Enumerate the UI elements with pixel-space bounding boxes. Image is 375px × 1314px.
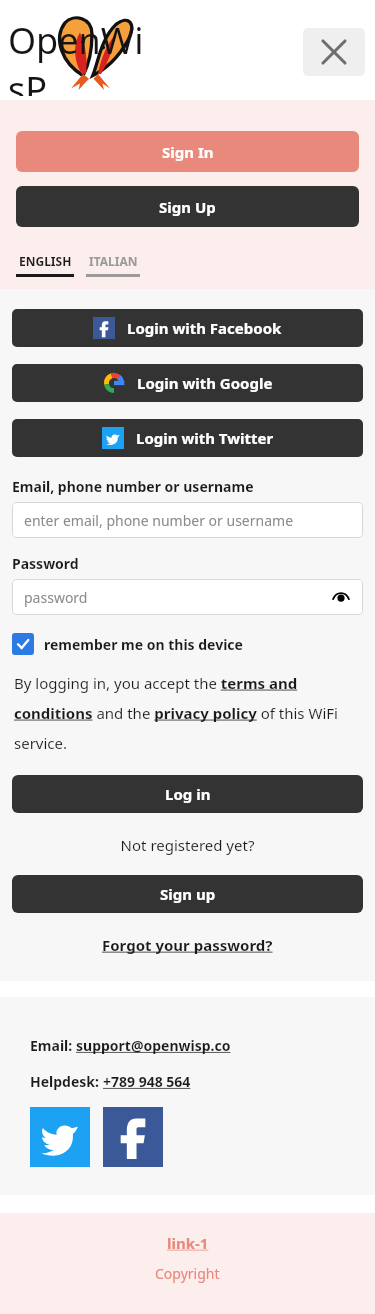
staticText: By logging in, you accept the terms and … [14, 673, 363, 753]
staticText: Sign up [160, 884, 216, 904]
staticText: Log in [165, 784, 211, 804]
button[interactable]: link-1 [167, 1233, 209, 1253]
staticText: password [24, 588, 88, 607]
staticText: Login with Facebook [127, 318, 282, 338]
staticText: enter email, phone number or username [24, 511, 294, 530]
staticText: Sign Up [159, 197, 216, 217]
staticText: Not registered yet? [12, 835, 363, 855]
button[interactable]: Facebook [103, 1107, 163, 1167]
staticText: Password [12, 554, 79, 573]
staticText: Sign In [162, 142, 214, 162]
staticText: OpenWisP [8, 16, 158, 96]
button[interactable]: Twitter [30, 1107, 90, 1167]
button[interactable]: enter email, phone number or username [12, 502, 363, 538]
staticText: ENGLISH [19, 253, 72, 269]
button[interactable]: Close [303, 28, 365, 76]
button[interactable]: ENGLISH [16, 253, 74, 277]
button[interactable]: Login with Facebook [12, 309, 363, 347]
staticText: Login with Twitter [136, 428, 274, 448]
button[interactable]: Sign up [12, 875, 363, 913]
staticText: remember me on this device [44, 635, 243, 654]
button[interactable]: Login with Google [12, 364, 363, 402]
button[interactable]: password [12, 579, 363, 615]
button[interactable]: Login with Twitter [12, 419, 363, 457]
staticText: Login with Google [137, 373, 273, 393]
button[interactable]: Log in [12, 775, 363, 813]
button[interactable]: ITALIAN [86, 253, 140, 277]
staticText: +789 948 564 [103, 1072, 191, 1091]
button[interactable]: Sign In [16, 131, 359, 172]
button[interactable]: Email: [30, 1036, 231, 1055]
button[interactable]: Sign Up [16, 186, 359, 227]
staticText: Helpdesk: [30, 1072, 103, 1091]
staticText: Forgot your password? [102, 935, 273, 955]
staticText: Email, phone number or username [12, 477, 254, 496]
staticText: ITALIAN [89, 253, 138, 269]
button[interactable]: remember me on this device [12, 633, 243, 655]
staticText: support@openwisp.co [76, 1036, 231, 1055]
staticText: Email: [30, 1036, 76, 1055]
button[interactable]: Helpdesk: [30, 1072, 191, 1091]
staticText: link-1 [167, 1233, 209, 1253]
button[interactable]: Show password [331, 587, 351, 607]
staticText: Copyright [155, 1264, 220, 1283]
button[interactable]: Forgot your password? [12, 935, 363, 955]
